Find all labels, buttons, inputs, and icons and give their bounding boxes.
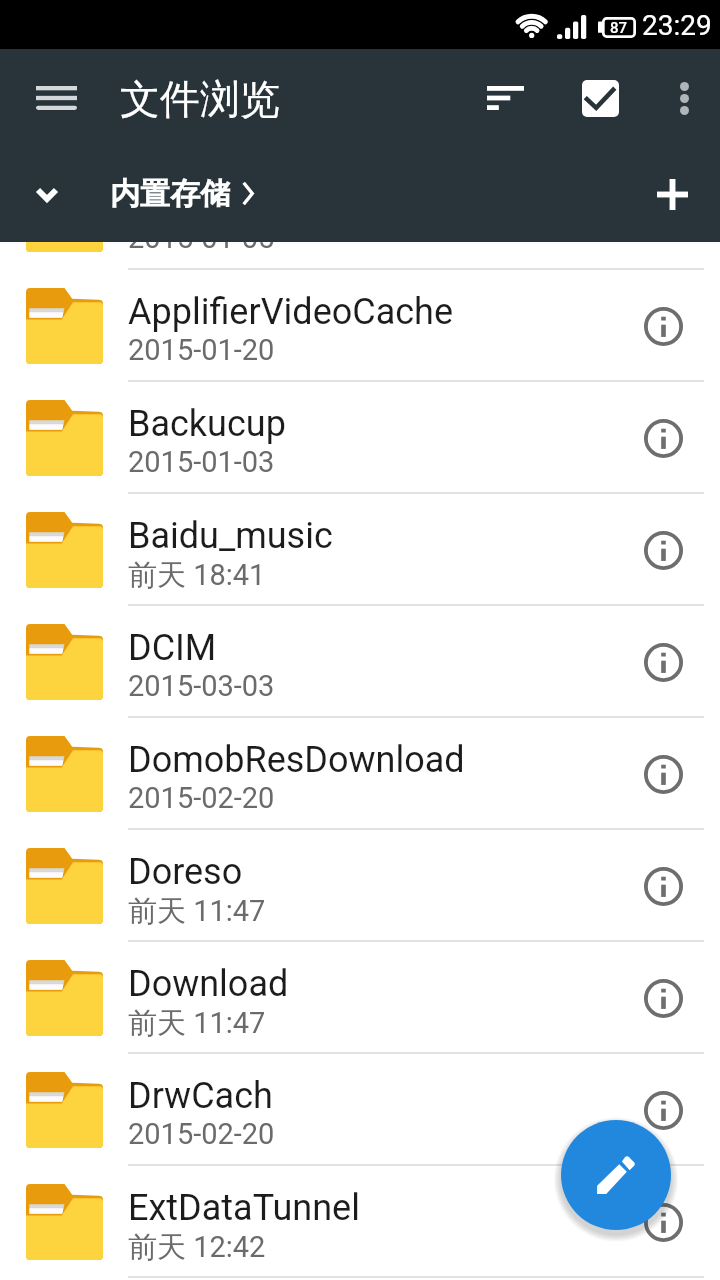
button[interactable]: Doreso: [0, 830, 720, 942]
button[interactable]: 内置存储: [110, 167, 254, 221]
staticText: 文件浏览: [120, 74, 280, 124]
staticText: DCIM: [128, 627, 217, 669]
button[interactable]: New file: [561, 1120, 671, 1230]
button[interactable]: File info: [620, 507, 706, 593]
staticText: 前天 11:47: [128, 1005, 266, 1042]
button[interactable]: ApplifierVideoCache: [0, 270, 720, 382]
staticText: 2015-01-20: [128, 333, 275, 367]
button[interactable]: File info: [620, 1067, 706, 1153]
staticText: ExtDataTunnel: [128, 1187, 360, 1229]
button[interactable]: DrwCach: [0, 1054, 720, 1166]
button[interactable]: File info: [620, 1179, 706, 1265]
button[interactable]: Add new: [630, 152, 714, 236]
button[interactable]: Open navigation menu: [14, 56, 98, 140]
staticText: Baidu_music: [128, 515, 333, 557]
button[interactable]: Baidu_music: [0, 494, 720, 606]
button[interactable]: DCIM: [0, 606, 720, 718]
button[interactable]: Collapse path: [6, 153, 88, 235]
staticText: Backucup: [128, 403, 286, 445]
button[interactable]: ExtDataTunnel: [0, 1166, 720, 1278]
staticText: 23:29: [642, 9, 712, 42]
staticText: 2015-03-03: [128, 669, 275, 703]
button[interactable]: Backucup: [0, 382, 720, 494]
staticText: 前天 11:47: [128, 893, 266, 930]
button[interactable]: File info: [620, 395, 706, 481]
button[interactable]: Download: [0, 942, 720, 1054]
button[interactable]: More options: [642, 56, 720, 140]
button[interactable]: DomobResDownload: [0, 718, 720, 830]
staticText: 2015-01-05: [128, 242, 275, 255]
staticText: 87: [610, 19, 628, 37]
staticText: DrwCach: [128, 1075, 273, 1117]
staticText: 前天 18:41: [128, 557, 266, 594]
staticText: 内置存储: [110, 175, 230, 213]
button[interactable]: File info: [620, 619, 706, 705]
button[interactable]: File info: [620, 283, 706, 369]
staticText: 2015-01-03: [128, 445, 275, 479]
button[interactable]: Select all: [558, 56, 642, 140]
button[interactable]: File info: [620, 955, 706, 1041]
button[interactable]: AndroidCache: [0, 242, 720, 270]
staticText: 2015-02-20: [128, 1117, 275, 1151]
button[interactable]: Sort: [463, 56, 547, 140]
staticText: Doreso: [128, 851, 243, 893]
staticText: Download: [128, 963, 289, 1005]
button[interactable]: File info: [620, 843, 706, 929]
staticText: 2015-02-20: [128, 781, 275, 815]
staticText: ApplifierVideoCache: [128, 291, 454, 333]
staticText: DomobResDownload: [128, 739, 465, 781]
staticText: 前天 12:42: [128, 1229, 266, 1266]
button[interactable]: File info: [620, 731, 706, 817]
